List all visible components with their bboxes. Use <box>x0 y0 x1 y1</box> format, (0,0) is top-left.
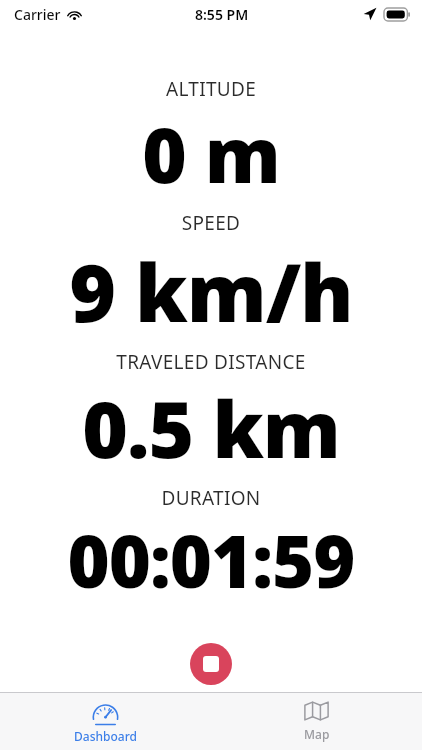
staticText: Map <box>304 726 330 742</box>
staticText: 8:55 PM <box>195 5 249 24</box>
staticText: Dashboard <box>74 728 137 744</box>
staticText: SPEED <box>0 210 422 236</box>
staticText: ALTITUDE <box>0 76 422 102</box>
button[interactable]: Stop <box>190 643 232 685</box>
staticText: 0 m <box>0 102 422 206</box>
staticText: DURATION <box>0 485 422 511</box>
button[interactable]: Dashboard <box>0 693 211 750</box>
staticText: TRAVELED DISTANCE <box>0 349 422 375</box>
staticText: 9 km/h <box>0 236 422 345</box>
staticText: 00:01:59 <box>0 511 422 609</box>
staticText: 0.5 km <box>0 375 422 481</box>
button[interactable]: Map <box>211 693 422 750</box>
staticText: Carrier <box>14 5 61 24</box>
